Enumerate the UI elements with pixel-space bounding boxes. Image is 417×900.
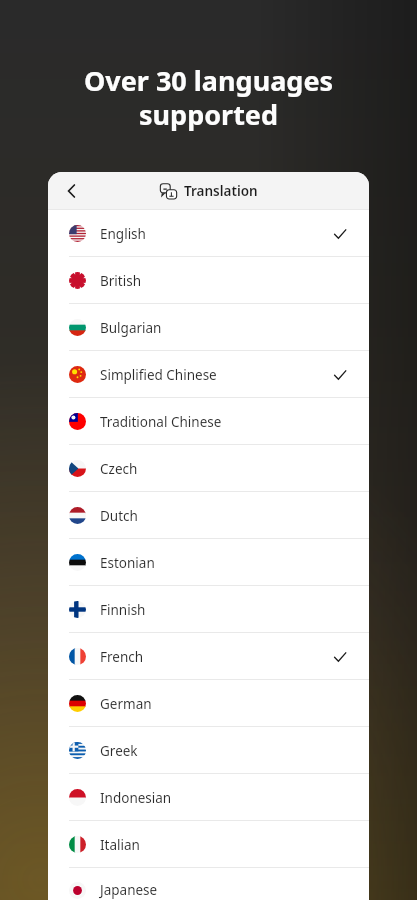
button[interactable]: Back <box>58 177 86 205</box>
staticText: Italian <box>100 836 140 854</box>
button[interactable]: Traditional Chinese <box>48 398 369 445</box>
staticText: Translation <box>184 182 258 200</box>
staticText: German <box>100 695 152 713</box>
button[interactable]: British <box>48 257 369 304</box>
button[interactable]: Bulgarian <box>48 304 369 351</box>
staticText: Finnish <box>100 601 146 619</box>
button[interactable]: German <box>48 680 369 727</box>
staticText: Simplified Chinese <box>100 366 217 384</box>
staticText: Czech <box>100 460 138 478</box>
button[interactable]: French <box>48 633 369 680</box>
button[interactable]: Indonesian <box>48 774 369 821</box>
button[interactable]: Greek <box>48 727 369 774</box>
button[interactable]: Czech <box>48 445 369 492</box>
staticText: Japanese <box>100 881 158 899</box>
button[interactable]: Italian <box>48 821 369 868</box>
button[interactable]: Japanese <box>48 868 369 900</box>
staticText: Bulgarian <box>100 319 162 337</box>
staticText: British <box>100 272 141 290</box>
staticText: Greek <box>100 742 138 760</box>
button[interactable]: Estonian <box>48 539 369 586</box>
staticText: French <box>100 648 144 666</box>
button[interactable]: Dutch <box>48 492 369 539</box>
staticText: Over 30 languages supported <box>0 62 417 133</box>
staticText: Estonian <box>100 554 155 572</box>
staticText: English <box>100 225 146 243</box>
staticText: Dutch <box>100 507 138 525</box>
button[interactable]: English <box>48 210 369 257</box>
button[interactable]: Simplified Chinese <box>48 351 369 398</box>
button[interactable]: Finnish <box>48 586 369 633</box>
staticText: Indonesian <box>100 789 172 807</box>
staticText: Traditional Chinese <box>100 413 222 431</box>
